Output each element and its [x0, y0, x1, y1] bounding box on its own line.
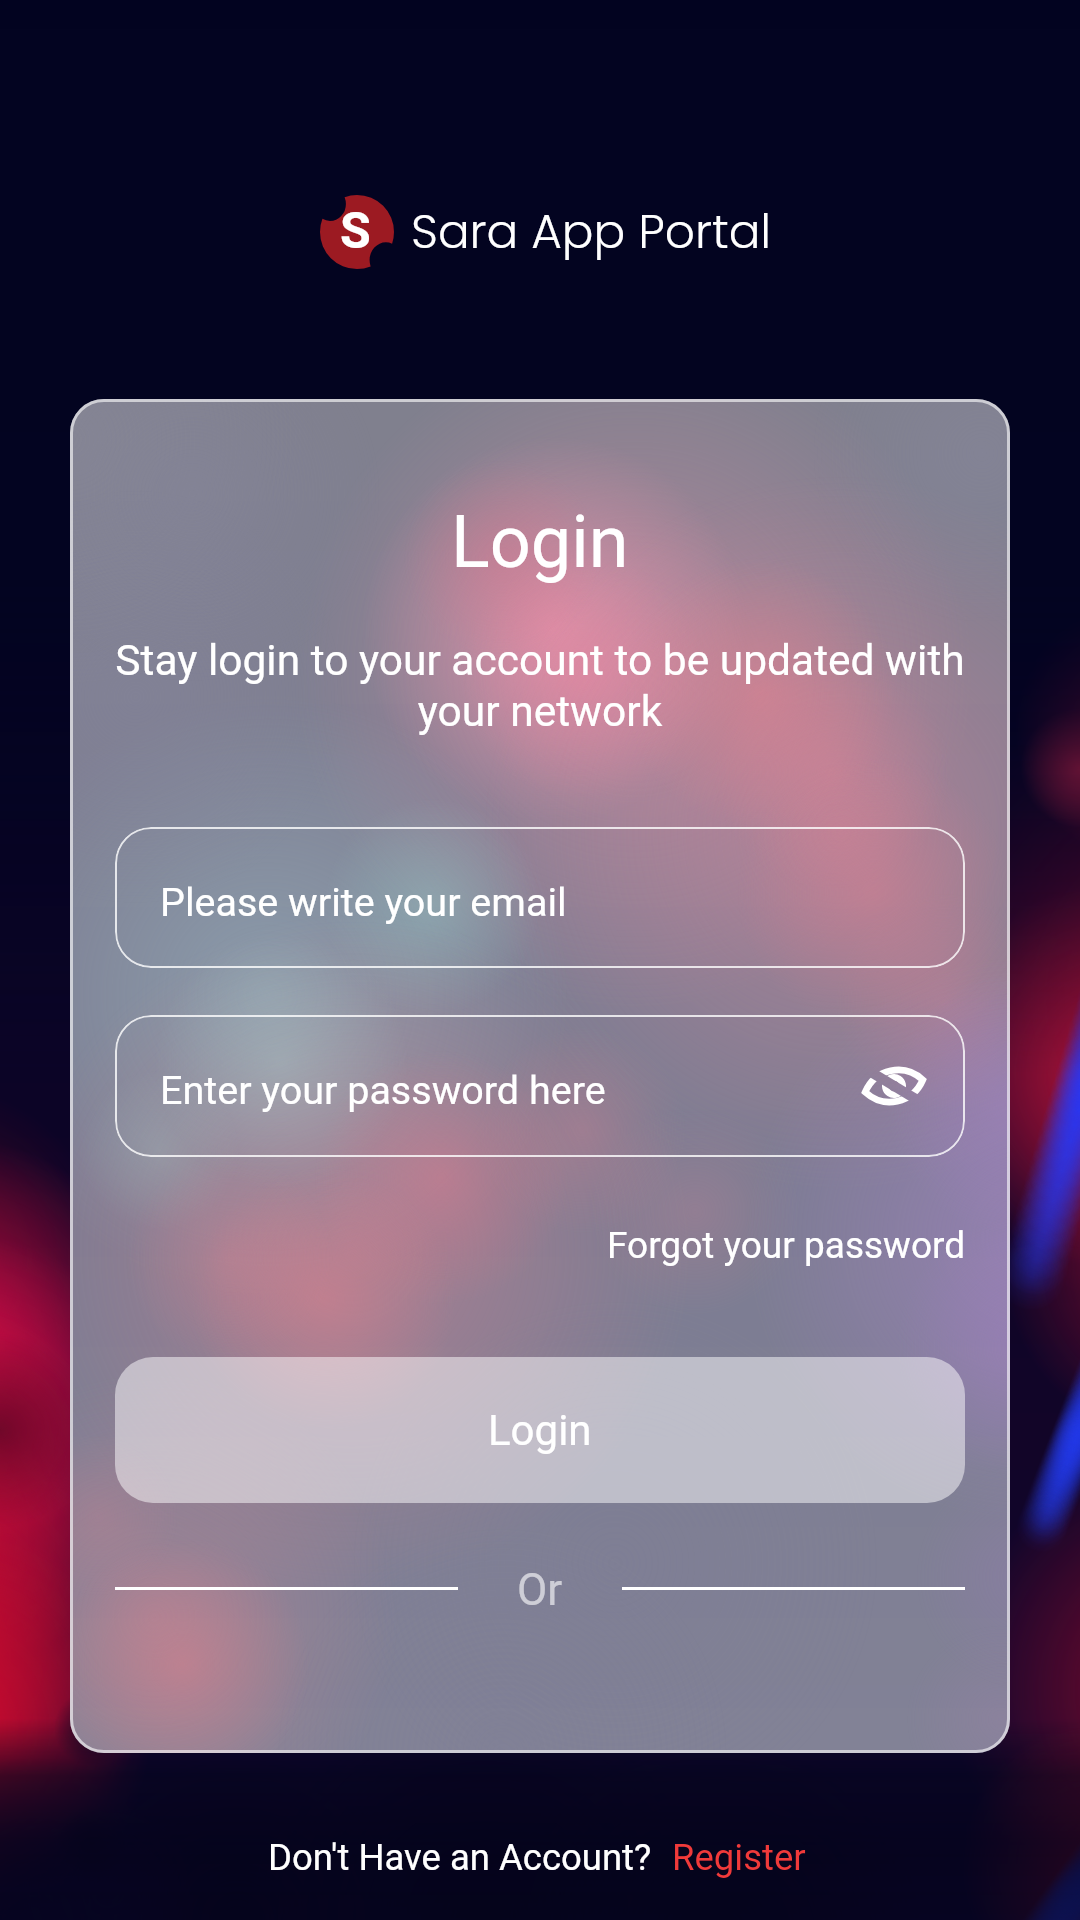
staticText: Register	[672, 1836, 806, 1879]
button[interactable]: Please write your email	[115, 827, 965, 968]
staticText: Enter your password here	[160, 1067, 606, 1113]
button[interactable]: Login	[115, 1357, 965, 1503]
staticText: Stay login to your account to be updated…	[90, 636, 990, 737]
button[interactable]: Forgot your password	[599, 1213, 974, 1278]
button[interactable]: Register	[666, 1828, 812, 1887]
staticText: Or	[517, 1564, 563, 1616]
staticText: Please write your email	[160, 879, 567, 925]
button[interactable]: Enter your password here	[115, 1015, 965, 1157]
staticText: Sara App Portal	[411, 199, 772, 265]
staticText: Don't Have an Account?	[268, 1836, 652, 1879]
staticText: Forgot your password	[607, 1224, 966, 1267]
staticText: Login	[451, 500, 629, 584]
staticText: S	[340, 202, 371, 261]
staticText: Login	[488, 1406, 592, 1455]
button[interactable]: Show password	[857, 1049, 931, 1123]
